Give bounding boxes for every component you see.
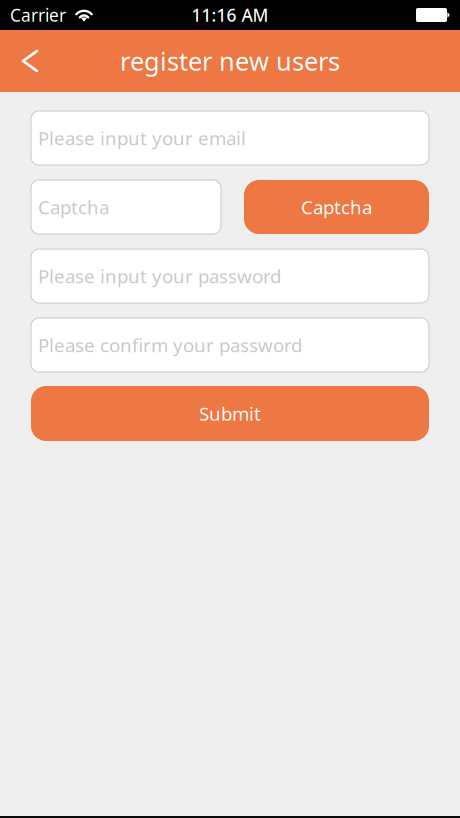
button[interactable]: Captcha <box>244 180 429 234</box>
staticText: Please input your email <box>38 126 246 150</box>
staticText: Please input your password <box>38 264 281 288</box>
staticText: Captcha <box>301 195 372 219</box>
staticText: Carrier <box>10 3 66 26</box>
staticText: Please confirm your password <box>38 333 302 357</box>
staticText: Captcha <box>38 195 109 219</box>
staticText: Submit <box>199 401 261 426</box>
button[interactable]: Submit <box>31 386 429 441</box>
button[interactable]: Please input your password <box>31 249 429 303</box>
button[interactable]: Please confirm your password <box>31 318 429 372</box>
staticText: register new users <box>120 44 340 78</box>
button[interactable]: Please input your email <box>31 111 429 165</box>
button[interactable]: Captcha <box>31 180 221 234</box>
button[interactable]: Back <box>8 30 54 92</box>
staticText: 11:16 AM <box>191 3 268 26</box>
